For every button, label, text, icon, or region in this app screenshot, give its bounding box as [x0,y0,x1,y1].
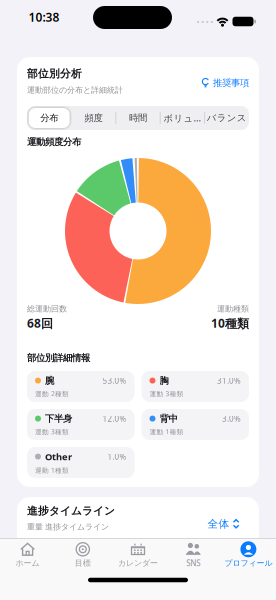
staticText: 全体 [207,517,229,530]
staticText: 分布 [40,112,58,124]
staticText: 運動 3種類 [149,389,183,398]
staticText: 3.0% [222,413,241,424]
button[interactable]: 全体 [207,517,240,530]
staticText: 部位別分析 [27,67,82,80]
staticText: 運動 1種類 [35,466,69,475]
staticText: 腕 [45,375,54,386]
button[interactable]: カレンダー [110,541,166,568]
staticText: 運動部位の分布と詳細統計 [27,85,123,95]
staticText: カレンダー [118,558,158,568]
staticText: ホーム [16,558,40,568]
button[interactable]: SNS [166,541,221,568]
staticText: 1.0% [107,451,126,462]
staticText: 運動 3種類 [35,427,69,436]
staticText: 下半身 [45,413,72,424]
staticText: 運動頻度分布 [27,136,81,148]
staticText: 総運動回数 [27,304,67,314]
staticText: 10:38 [28,9,59,25]
staticText: 12.0% [102,413,126,424]
button[interactable]: 推奨事項 [201,77,249,88]
staticText: 重量 進捗タイムライン [27,522,109,532]
staticText: 68回 [27,315,53,331]
staticText: Other [45,450,72,463]
button[interactable]: 目標 [55,541,110,568]
staticText: 胸 [159,375,168,386]
staticText: 進捗タイムライン [27,504,115,517]
staticText: 目標 [75,558,91,568]
staticText: ボリュ… [163,112,201,124]
staticText: 31.0% [217,375,241,386]
staticText: 運動種類 [217,304,249,314]
button[interactable]: ボリュ… [160,106,205,130]
staticText: 53.0% [102,375,126,386]
button[interactable]: 分布 [27,106,71,130]
staticText: 時間 [129,112,147,124]
button[interactable]: 頻度 [71,106,116,130]
staticText: SNS [186,558,200,568]
staticText: 頻度 [85,112,103,124]
staticText: 部位別詳細情報 [27,352,90,364]
staticText: 運動 2種類 [35,389,69,398]
staticText: 運動 1種類 [149,427,183,436]
staticText: バランス [207,112,247,124]
button[interactable]: ホーム [0,541,55,568]
button[interactable]: プロフィール [221,541,276,568]
button[interactable]: バランス [205,106,249,130]
staticText: 10種類 [211,315,249,331]
staticText: 推奨事項 [213,77,249,88]
staticText: プロフィール [224,558,272,568]
button[interactable]: 時間 [116,106,160,130]
staticText: 背中 [159,413,177,424]
